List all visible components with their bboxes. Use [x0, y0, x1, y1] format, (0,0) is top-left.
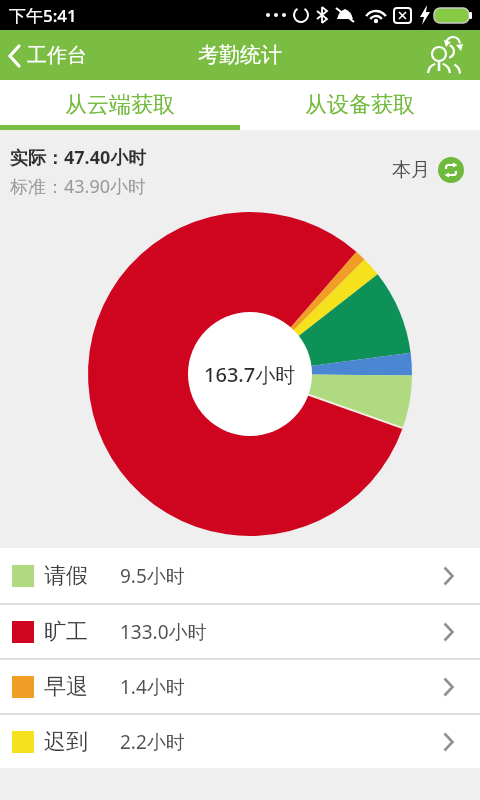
staticText: 2.2小时	[120, 729, 185, 755]
staticText: 1.4小时	[120, 674, 185, 700]
button[interactable]: 旷工	[0, 605, 480, 658]
button[interactable]: 从云端获取	[0, 80, 240, 130]
staticText: 迟到	[44, 728, 88, 756]
staticText: 本月	[392, 158, 430, 182]
button[interactable]	[426, 32, 472, 78]
button[interactable]: 早退	[0, 660, 480, 713]
button[interactable]: 请假	[0, 548, 480, 603]
staticText: 标准：43.90小时	[10, 174, 147, 199]
staticText: 从设备获取	[305, 91, 415, 119]
staticText: 9.5小时	[120, 563, 185, 589]
staticText: 考勤统计	[198, 42, 282, 68]
staticText: 下午5:41	[9, 4, 77, 27]
button[interactable]	[438, 157, 464, 183]
button[interactable]: 从设备获取	[240, 80, 480, 130]
staticText: 旷工	[44, 618, 88, 646]
staticText: 133.0小时	[120, 619, 207, 645]
staticText: 163.7小时	[204, 361, 296, 388]
staticText: 工作台	[27, 43, 87, 68]
button[interactable]: 工作台	[0, 43, 87, 68]
staticText: 早退	[44, 673, 88, 701]
staticText: 从云端获取	[65, 91, 175, 119]
staticText: 实际：47.40小时	[10, 145, 147, 170]
staticText: 请假	[44, 562, 88, 590]
button[interactable]: 迟到	[0, 715, 480, 768]
